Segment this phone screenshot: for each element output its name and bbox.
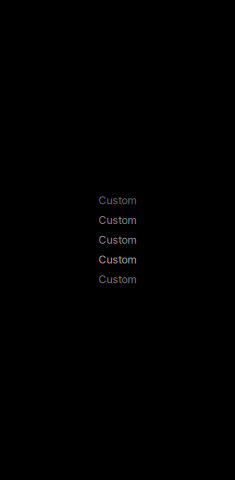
staticText: Custom: [98, 234, 136, 246]
staticText: Custom: [98, 273, 136, 286]
staticText: Custom: [98, 194, 136, 207]
staticText: Custom: [98, 253, 136, 266]
staticText: Custom: [98, 214, 136, 227]
